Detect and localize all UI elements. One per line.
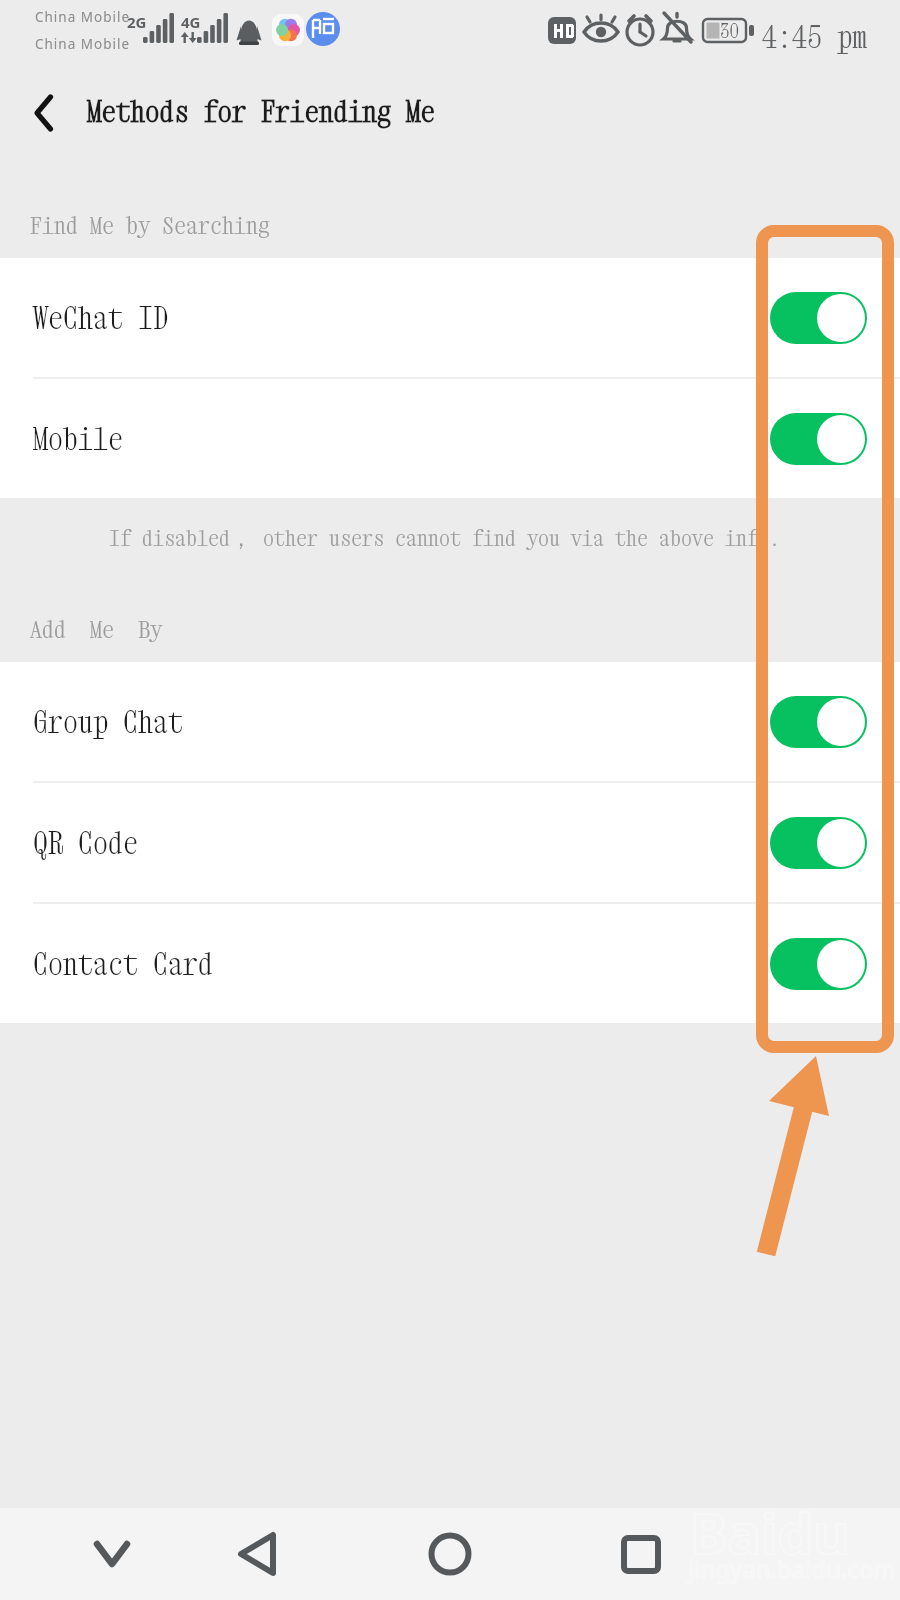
staticText: WeChat ID — [33, 300, 770, 336]
button[interactable]: Toggle on — [770, 292, 867, 344]
button[interactable]: Recent apps — [586, 1508, 696, 1600]
staticText: China Mobile — [35, 35, 131, 53]
staticText: If disabled， other users cannot find you… — [109, 525, 869, 553]
staticText: China Mobile — [35, 8, 131, 26]
staticText: Contact Card — [33, 946, 770, 982]
button[interactable]: Toggle on — [770, 938, 867, 990]
staticText: Methods for Friending Me — [87, 94, 436, 129]
staticText: Group Chat — [33, 704, 770, 740]
button[interactable]: Contact Card — [0, 904, 900, 1023]
staticText: 4G — [181, 12, 201, 32]
button[interactable]: Mobile — [0, 379, 900, 498]
staticText: Add Me By — [30, 615, 162, 644]
button[interactable]: Back — [202, 1508, 312, 1600]
button[interactable]: QR Code — [0, 783, 900, 902]
staticText: Mobile — [33, 421, 770, 457]
staticText: QR Code — [33, 825, 770, 861]
staticText: 4:45 pm — [762, 19, 867, 55]
button[interactable]: Home — [395, 1508, 505, 1600]
button[interactable]: Hide keyboard — [57, 1508, 167, 1600]
staticText: 2G — [127, 12, 147, 32]
button[interactable]: Group Chat — [0, 662, 900, 781]
staticText: 30 — [720, 20, 740, 43]
button[interactable]: Toggle on — [770, 817, 867, 869]
staticText: Baidu — [690, 1494, 850, 1570]
button[interactable]: WeChat ID — [0, 258, 900, 377]
button[interactable]: Toggle on — [770, 413, 867, 465]
button[interactable]: Back — [14, 86, 74, 146]
staticText: Find Me by Searching — [30, 211, 270, 240]
button[interactable]: Toggle on — [770, 696, 867, 748]
